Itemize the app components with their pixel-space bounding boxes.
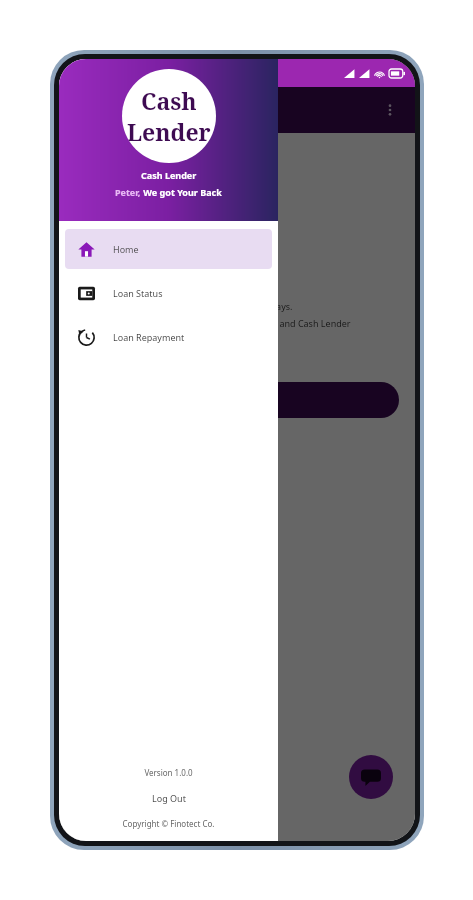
staticText: Loan Status bbox=[113, 287, 163, 299]
staticText: Cash Lender bbox=[75, 149, 199, 234]
staticText: Version 1.0.0 bbox=[59, 767, 278, 778]
button[interactable]: APPLY NOW bbox=[75, 382, 399, 418]
button[interactable]: More options bbox=[375, 95, 405, 125]
staticText: policies. bbox=[75, 334, 110, 346]
button[interactable]: Loan Status bbox=[65, 273, 272, 313]
staticText: Terms and Conditions. bbox=[75, 252, 230, 271]
staticText: Lender bbox=[127, 116, 211, 147]
staticText: Cash Lender bbox=[141, 169, 197, 181]
staticText: Cash bbox=[141, 85, 197, 116]
staticText: Loan term from 30 days to a maximum of 3… bbox=[75, 300, 293, 312]
staticText: Log Out bbox=[152, 792, 186, 804]
button[interactable]: Log Out bbox=[59, 792, 278, 804]
staticText: Interest rate depending your repayment h… bbox=[75, 317, 351, 329]
staticText: Home bbox=[113, 243, 139, 255]
button[interactable]: Chat support bbox=[349, 755, 393, 799]
staticText: Minimum of 1,000 to a maximum of 150,000 bbox=[75, 283, 263, 295]
staticText: Loan Repayment bbox=[113, 331, 185, 343]
button[interactable]: Home bbox=[65, 229, 272, 269]
staticText: Peter, bbox=[115, 186, 141, 198]
button[interactable]: Loan Repayment bbox=[65, 317, 272, 357]
staticText: Copyright © Finotect Co. bbox=[59, 818, 278, 829]
staticText: We got Your Back bbox=[141, 186, 222, 198]
